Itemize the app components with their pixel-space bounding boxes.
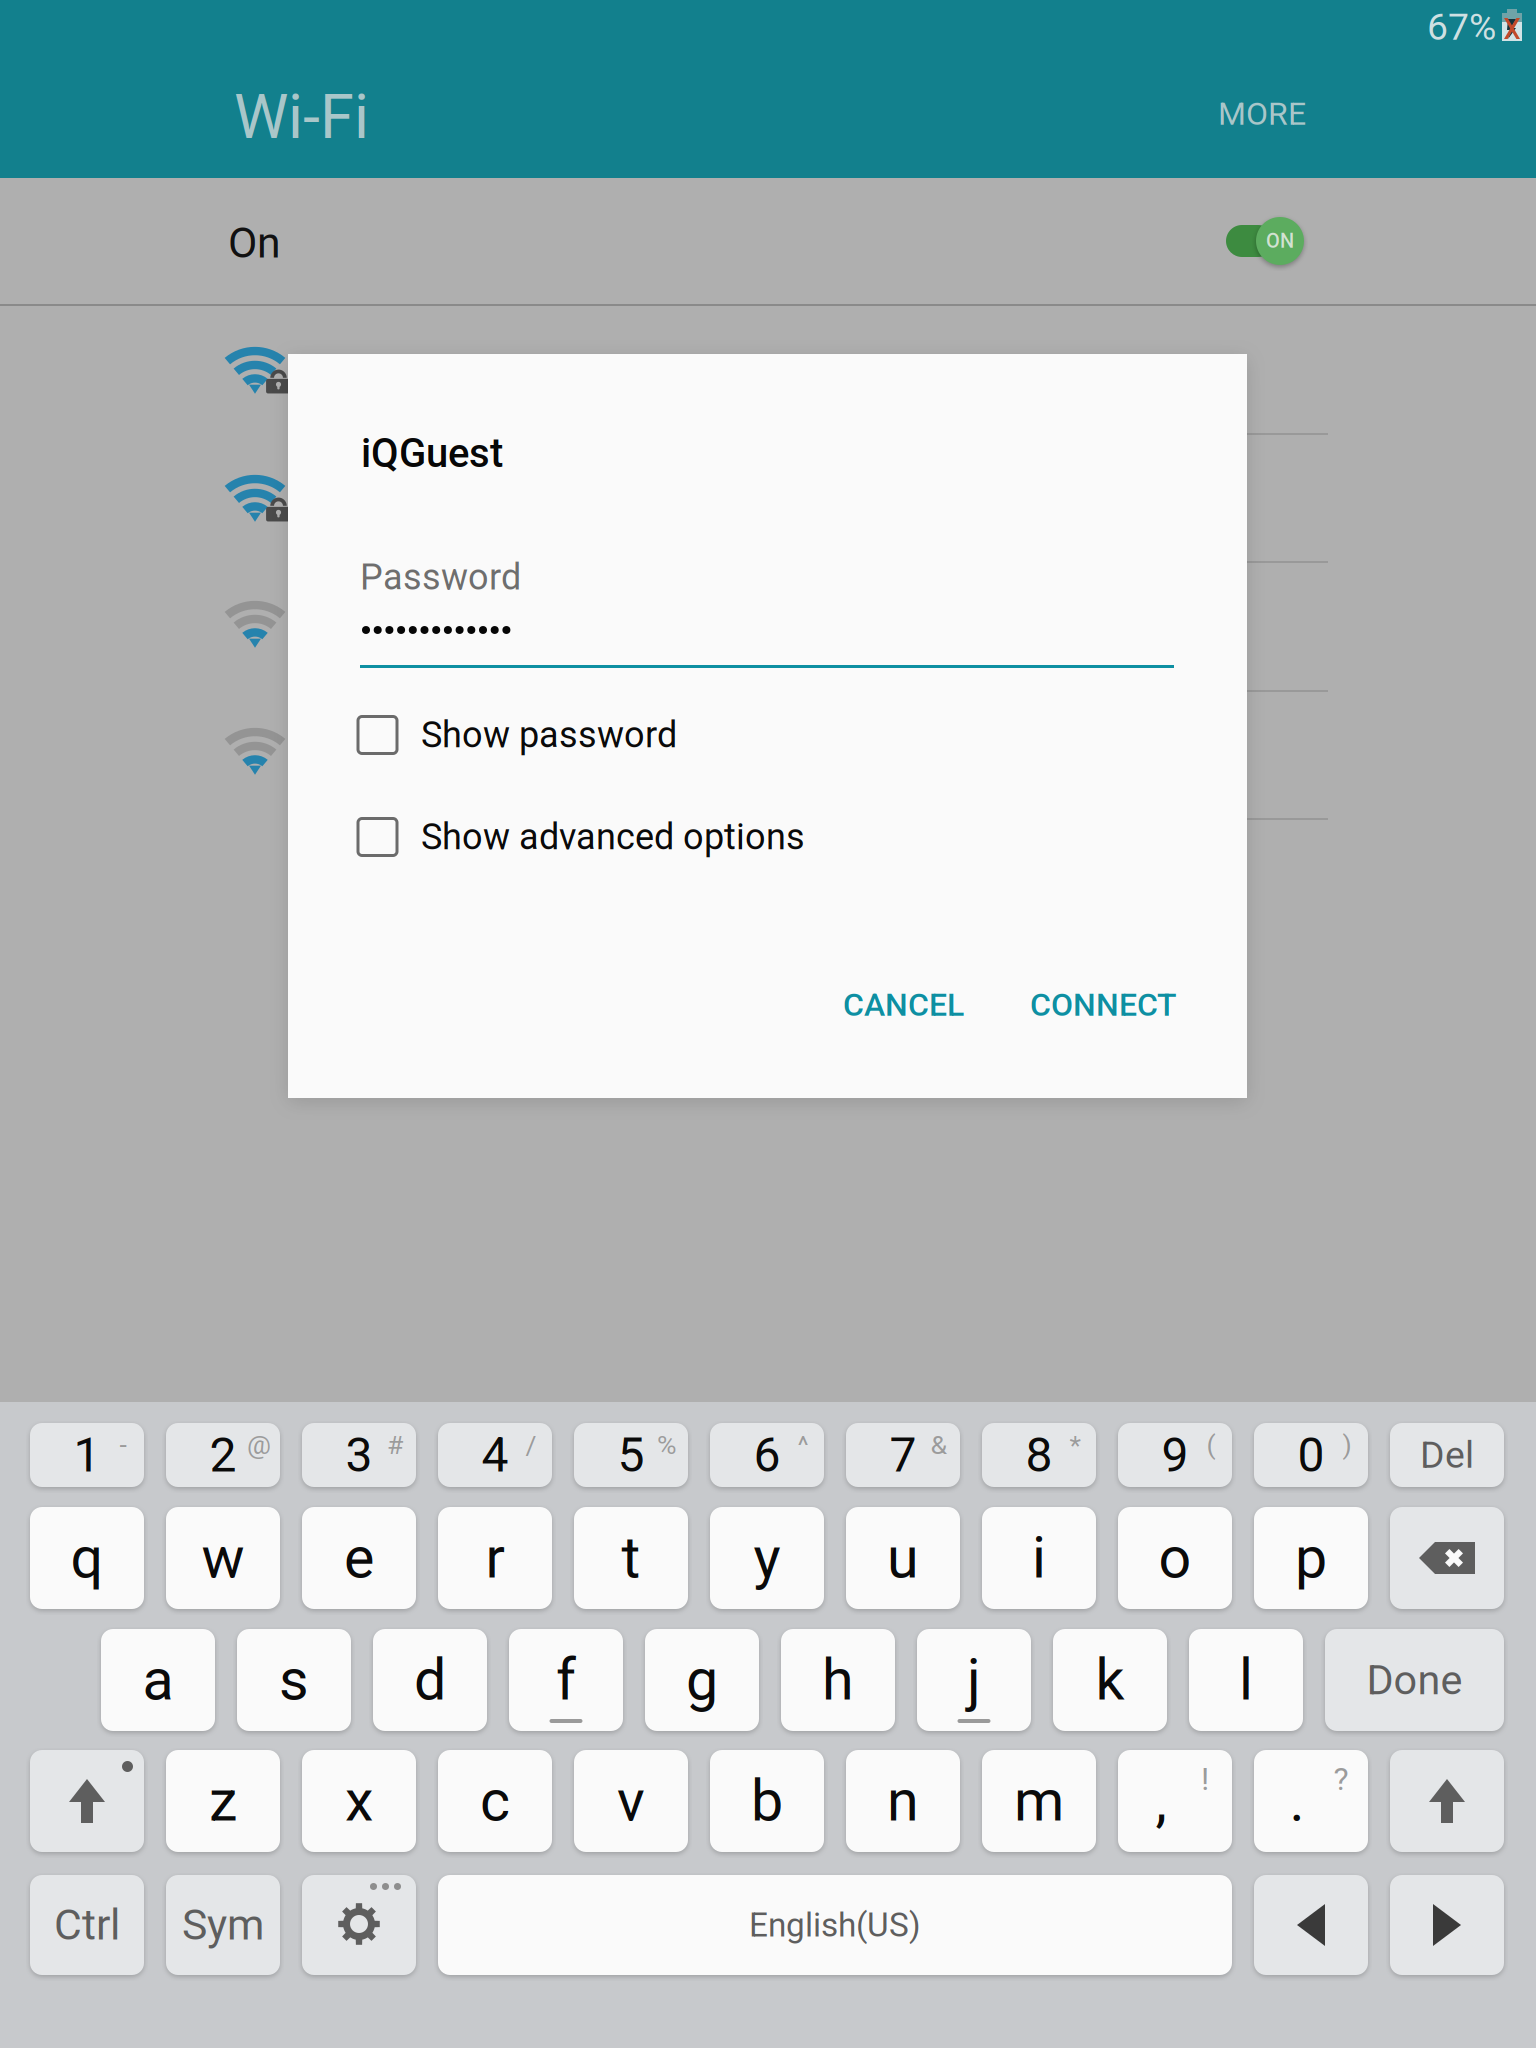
button[interactable]: m [982, 1750, 1096, 1852]
button[interactable]: z [166, 1750, 280, 1852]
button[interactable]: t [574, 1507, 688, 1609]
staticText: Del [1420, 1433, 1474, 1477]
button[interactable]: Shift [30, 1750, 144, 1852]
staticText: m [1014, 1767, 1064, 1835]
button[interactable]: v [574, 1750, 688, 1852]
button[interactable]: u [846, 1507, 960, 1609]
staticText: English(US) [749, 1905, 921, 1945]
button[interactable]: 9 [1118, 1423, 1232, 1487]
button[interactable]: 7 [846, 1423, 960, 1487]
staticText: Done [1366, 1656, 1462, 1704]
button[interactable]: Move left [1254, 1875, 1368, 1975]
button[interactable]: Show advanced options [358, 801, 1118, 873]
staticText: MORE [1218, 95, 1306, 132]
button[interactable]: s [237, 1629, 351, 1731]
button[interactable]: d [373, 1629, 487, 1731]
staticText: Password [360, 556, 521, 598]
button[interactable]: English(US) [438, 1875, 1232, 1975]
staticText: y [753, 1524, 780, 1592]
button[interactable]: j [917, 1629, 1031, 1731]
button[interactable]: 4 [438, 1423, 552, 1487]
staticText: 7 [889, 1427, 916, 1483]
button[interactable]: e [302, 1507, 416, 1609]
staticText: 0 [1297, 1427, 1324, 1483]
staticText: CANCEL [843, 986, 964, 1023]
button[interactable]: h [781, 1629, 895, 1731]
staticText: o [1158, 1524, 1191, 1592]
button[interactable]: x [302, 1750, 416, 1852]
staticText: Wi-Fi [234, 81, 369, 153]
staticText: g [686, 1646, 718, 1714]
button[interactable]: k [1053, 1629, 1167, 1731]
staticText: l [1239, 1646, 1253, 1714]
button[interactable]: Ctrl [30, 1875, 144, 1975]
button[interactable]: Shift [1390, 1750, 1504, 1852]
staticText: a [142, 1646, 173, 1714]
staticText: 9 [1161, 1427, 1188, 1483]
button[interactable]: y [710, 1507, 824, 1609]
button[interactable]: g [645, 1629, 759, 1731]
button[interactable]: , [1118, 1750, 1232, 1852]
button[interactable]: 0 [1254, 1423, 1368, 1487]
button[interactable]: Move right [1390, 1875, 1504, 1975]
button[interactable]: w [166, 1507, 280, 1609]
staticText: ( [1206, 1429, 1215, 1461]
staticText: ) [1342, 1429, 1351, 1461]
button[interactable]: Show password [358, 699, 1118, 771]
staticText: - [119, 1429, 126, 1461]
button[interactable]: 2 [166, 1423, 280, 1487]
staticText: r [485, 1524, 504, 1592]
button[interactable]: 3 [302, 1423, 416, 1487]
button[interactable]: f [509, 1629, 623, 1731]
staticText: On [228, 218, 281, 268]
staticText: 3 [345, 1427, 372, 1483]
staticText: % [657, 1429, 677, 1461]
staticText: 8 [1025, 1427, 1052, 1483]
staticText: s [279, 1646, 309, 1714]
button[interactable]: a [101, 1629, 215, 1731]
button[interactable]: Wi-Fi on [1211, 217, 1289, 265]
button[interactable]: q [30, 1507, 144, 1609]
button[interactable]: CANCEL [816, 964, 991, 1045]
staticText: ON [1266, 229, 1294, 253]
staticText: ^ [797, 1429, 808, 1461]
staticText: n [887, 1767, 919, 1835]
staticText: Ctrl [54, 1900, 120, 1950]
button[interactable]: . [1254, 1750, 1368, 1852]
button[interactable]: Keyboard settings [302, 1875, 416, 1975]
staticText: ? [1333, 1760, 1348, 1798]
button[interactable]: l [1189, 1629, 1303, 1731]
staticText: u [887, 1524, 919, 1592]
button[interactable]: 1 [30, 1423, 144, 1487]
staticText: / [525, 1429, 536, 1461]
button[interactable]: Del [1390, 1423, 1504, 1487]
button[interactable]: n [846, 1750, 960, 1852]
button[interactable]: 5 [574, 1423, 688, 1487]
button[interactable]: c [438, 1750, 552, 1852]
staticText: d [414, 1646, 446, 1714]
button[interactable]: r [438, 1507, 552, 1609]
button[interactable]: i [982, 1507, 1096, 1609]
staticText: CONNECT [1030, 986, 1177, 1023]
button[interactable]: p [1254, 1507, 1368, 1609]
staticText: x [345, 1767, 373, 1835]
staticText: 2 [209, 1427, 236, 1483]
button[interactable]: MORE [1198, 77, 1326, 150]
staticText: , [1155, 1767, 1166, 1835]
button[interactable]: Sym [166, 1875, 280, 1975]
staticText: Sym [182, 1900, 264, 1950]
button[interactable]: Done [1325, 1629, 1504, 1731]
button[interactable]: CONNECT [1003, 964, 1204, 1045]
staticText: . [1289, 1767, 1304, 1835]
staticText: j [967, 1646, 981, 1714]
button[interactable]: o [1118, 1507, 1232, 1609]
staticText: f [556, 1646, 576, 1714]
staticText: q [70, 1524, 103, 1592]
staticText: c [480, 1767, 510, 1835]
button[interactable]: b [710, 1750, 824, 1852]
button[interactable]: 6 [710, 1423, 824, 1487]
staticText: 5 [617, 1427, 644, 1483]
button[interactable]: Backspace [1390, 1507, 1504, 1609]
staticText: # [387, 1429, 403, 1461]
button[interactable]: 8 [982, 1423, 1096, 1487]
